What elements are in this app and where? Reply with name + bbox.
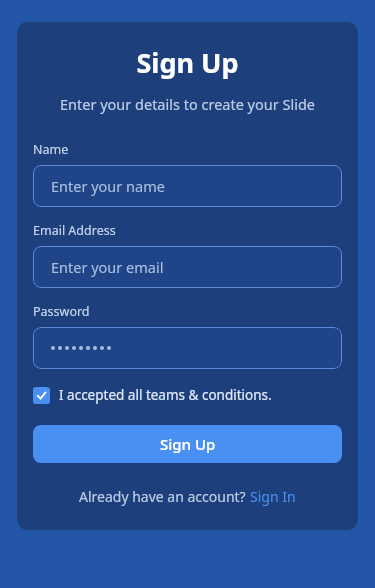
- button[interactable]: Enter your name: [33, 165, 342, 207]
- button[interactable]: Accept terms checkbox: [33, 385, 272, 405]
- staticText: Enter your email: [51, 257, 164, 277]
- staticText: Already have an account?: [79, 487, 250, 506]
- other: Accept terms checkbox: [33, 387, 50, 404]
- staticText: Enter your details to create your Slide: [33, 94, 342, 114]
- staticText: Sign Up: [160, 434, 216, 454]
- staticText: Enter your name: [51, 176, 165, 196]
- button[interactable]: [33, 327, 342, 369]
- staticText: Sign In: [250, 487, 296, 506]
- staticText: Sign Up: [33, 44, 342, 81]
- staticText: Email Address: [33, 222, 116, 239]
- staticText: Password: [33, 303, 90, 320]
- button[interactable]: Sign Up: [33, 425, 342, 463]
- button[interactable]: Enter your email: [33, 246, 342, 288]
- staticText: Name: [33, 141, 69, 158]
- staticText: I accepted all teams & conditions.: [59, 386, 272, 404]
- button[interactable]: Sign In: [250, 487, 296, 506]
